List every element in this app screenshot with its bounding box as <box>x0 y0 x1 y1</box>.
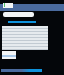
button[interactable]: Logo <box>3 3 13 8</box>
button[interactable]: Bottom bar <box>1 69 42 72</box>
other: App bar <box>0 4 64 11</box>
button[interactable]: Search <box>3 12 34 17</box>
